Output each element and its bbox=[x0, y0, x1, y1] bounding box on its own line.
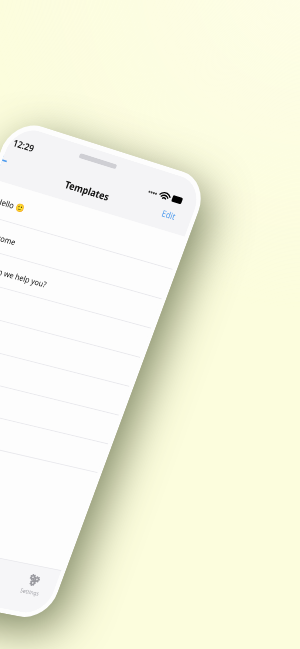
button[interactable]: Greeting bbox=[0, 277, 151, 358]
button[interactable]: Feedback bbox=[0, 369, 119, 444]
button[interactable]: How can we help you? bbox=[0, 246, 162, 329]
staticText: 12:29 bbox=[12, 136, 37, 154]
button[interactable]: Follow up bbox=[0, 308, 140, 387]
staticText: Templates bbox=[63, 177, 112, 204]
button[interactable]: Hello 🙂 bbox=[0, 180, 185, 270]
staticText: Hello 🙂 bbox=[0, 195, 27, 214]
other: Settings bbox=[25, 572, 42, 588]
staticText: Settings bbox=[19, 587, 40, 597]
button[interactable]: Add template bbox=[0, 150, 14, 172]
button[interactable]: Thank you bbox=[0, 339, 129, 416]
button[interactable]: Settings bbox=[5, 569, 59, 600]
staticText: How can we help you? bbox=[0, 259, 49, 290]
button[interactable]: Edit bbox=[160, 207, 178, 222]
staticText: Welcome bbox=[0, 228, 18, 247]
button[interactable]: Welcome bbox=[0, 215, 172, 299]
button[interactable]: Closing bbox=[0, 399, 108, 473]
